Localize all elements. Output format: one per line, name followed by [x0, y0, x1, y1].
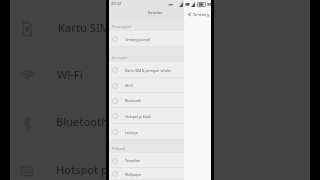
- button[interactable]: Kartu SIM: [10, 14, 310, 44]
- button[interactable]: Bluetooth: [109, 93, 184, 108]
- button[interactable]: Hotspot pribadi: [109, 108, 184, 124]
- button[interactable]: Wallpaper: [109, 168, 184, 180]
- staticText: Tentang: [193, 12, 210, 18]
- staticText: Pribadi: [112, 146, 126, 151]
- staticText: Wi-Fi: [125, 83, 134, 88]
- button[interactable]: Back: [184, 7, 211, 22]
- other: Wi-Fi: [18, 67, 36, 85]
- staticText: Perangkat: [112, 24, 132, 29]
- staticText: Tampilan: [125, 158, 140, 163]
- button[interactable]: Tentang ponsel: [109, 31, 184, 47]
- staticText: Bluetooth: [56, 114, 109, 129]
- button[interactable]: Lainnya: [109, 124, 184, 140]
- staticText: Setelan: [148, 10, 163, 16]
- staticText: Jaringan: [112, 55, 128, 60]
- other: Hotspot p: [18, 162, 36, 180]
- button[interactable]: Wi-Fi: [109, 78, 184, 93]
- other: Back: [187, 12, 192, 17]
- staticText: Kartu SIM: [58, 20, 110, 35]
- staticText: Kartu SIM & jaringan seluler: [125, 68, 172, 73]
- button[interactable]: Hotspot p: [10, 156, 310, 180]
- staticText: 20:32: [111, 1, 122, 6]
- staticText: Hotspot pribadi: [125, 114, 151, 119]
- staticText: Wi-Fi: [57, 67, 83, 82]
- button[interactable]: Tampilan: [109, 153, 184, 168]
- staticText: Wallpaper: [125, 172, 142, 177]
- staticText: Hotspot p: [56, 162, 108, 177]
- button[interactable]: Bluetooth: [10, 108, 310, 138]
- button[interactable]: Wi-Fi: [10, 61, 310, 91]
- staticText: Tentang ponsel: [125, 37, 151, 42]
- other: Kartu SIM: [18, 20, 36, 38]
- staticText: Bluetooth: [125, 98, 142, 103]
- button[interactable]: Kartu SIM & jaringan seluler: [109, 62, 184, 78]
- staticText: Lainnya: [125, 130, 138, 135]
- other: Bluetooth: [18, 114, 36, 132]
